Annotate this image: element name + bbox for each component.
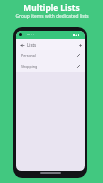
staticText: Shopping: [21, 64, 38, 69]
button[interactable]: Back: [18, 41, 26, 49]
staticText: Lists: [27, 42, 37, 48]
staticText: Multiple Lists: [23, 2, 80, 13]
staticText: Group items with dedicated lists: [15, 13, 89, 20]
button[interactable]: Add list: [76, 41, 84, 49]
button[interactable]: Personal: [16, 50, 85, 61]
button[interactable]: Shopping: [16, 61, 85, 72]
staticText: Personal: [21, 53, 36, 58]
